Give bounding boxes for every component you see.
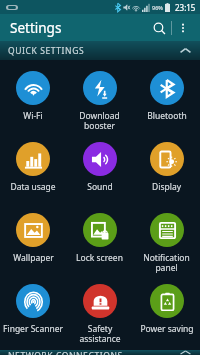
- button[interactable]: Sound: [66, 137, 133, 208]
- staticText: Settings: [10, 19, 62, 37]
- button[interactable]: QUICK SETTINGS: [0, 41, 200, 60]
- button[interactable]: Wallpaper: [0, 208, 66, 279]
- staticText: Finger Scanner: [3, 323, 63, 335]
- button[interactable]: Wi-Fi: [0, 66, 66, 137]
- staticText: Data usage: [10, 181, 56, 193]
- staticText: Lock screen: [76, 252, 123, 264]
- button[interactable]: Display: [133, 137, 200, 208]
- staticText: Bluetooth: [147, 110, 187, 122]
- staticText: Notification panel: [143, 252, 190, 273]
- staticText: Sound: [87, 181, 113, 193]
- staticText: Wallpaper: [13, 252, 54, 264]
- button[interactable]: Data usage: [0, 137, 66, 208]
- staticText: Wi-Fi: [23, 110, 43, 122]
- button[interactable]: Power saving: [133, 279, 200, 350]
- button[interactable]: Finger Scanner: [0, 279, 66, 350]
- staticText: Display: [152, 181, 181, 193]
- staticText: Power saving: [140, 323, 194, 335]
- staticText: 23:15: [175, 2, 196, 13]
- staticText: Download booster: [79, 110, 120, 131]
- button[interactable]: Search: [147, 16, 171, 40]
- staticText: NETWORK CONNECTIONS: [8, 350, 123, 355]
- button[interactable]: Safety assistance: [66, 279, 133, 350]
- button[interactable]: Notification panel: [133, 208, 200, 279]
- staticText: Safety assistance: [79, 323, 121, 344]
- button[interactable]: NETWORK CONNECTIONS: [0, 350, 200, 355]
- button[interactable]: More options: [172, 17, 194, 39]
- button[interactable]: Lock screen: [66, 208, 133, 279]
- staticText: QUICK SETTINGS: [8, 45, 85, 57]
- button[interactable]: Bluetooth: [133, 66, 200, 137]
- staticText: 96%: [152, 4, 163, 11]
- button[interactable]: Download booster: [66, 66, 133, 137]
